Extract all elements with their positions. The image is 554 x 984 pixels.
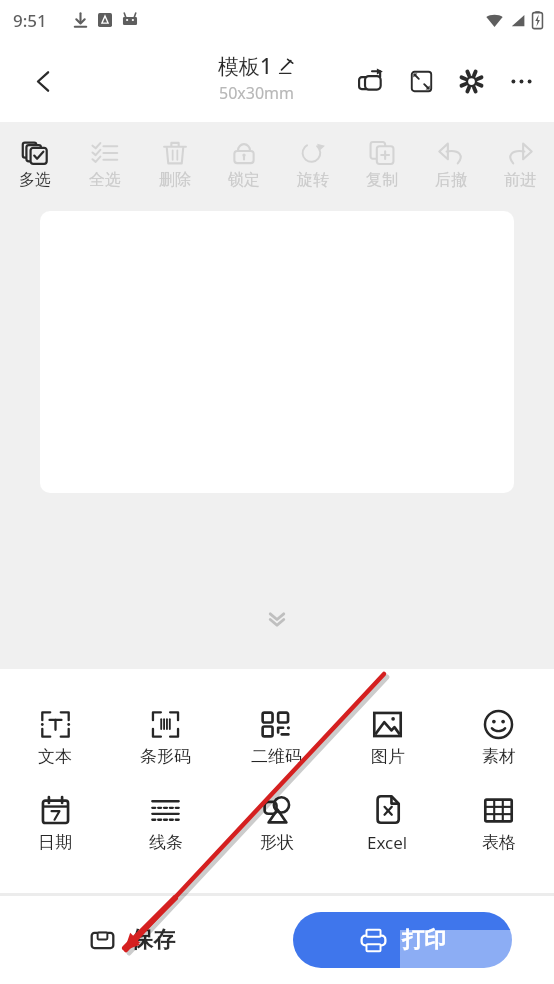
button[interactable]: Scale 1.0 <box>396 56 446 106</box>
staticText: 锁定 <box>228 170 260 190</box>
staticText: 旋转 <box>297 170 329 190</box>
button[interactable]: 删除 <box>140 122 209 207</box>
staticText: 文本 <box>38 746 72 767</box>
button[interactable]: 全选 <box>70 122 140 207</box>
button[interactable]: Excel <box>332 793 443 854</box>
staticText: 多选 <box>19 170 51 190</box>
button[interactable]: 多选 <box>0 122 70 207</box>
staticText: 保存 <box>131 926 175 954</box>
button[interactable]: 形状 <box>221 794 332 853</box>
button[interactable]: 后撤 <box>416 122 485 207</box>
staticText: 后撤 <box>435 170 467 190</box>
button[interactable]: More options <box>496 56 546 106</box>
staticText: 素材 <box>482 746 516 767</box>
button[interactable]: 复制 <box>347 122 416 207</box>
staticText: 删除 <box>159 170 191 190</box>
button[interactable]: Settings <box>446 56 496 106</box>
button[interactable]: 旋转 <box>278 122 347 207</box>
staticText: 日期 <box>38 832 72 853</box>
staticText: 前进 <box>504 170 536 190</box>
staticText: 线条 <box>149 832 183 853</box>
staticText: 复制 <box>366 170 398 190</box>
button[interactable]: 表格 <box>443 794 554 853</box>
button[interactable]: 二维码 <box>221 708 332 767</box>
button[interactable]: Back <box>20 58 66 104</box>
staticText: 打印 <box>402 926 446 954</box>
button[interactable]: 素材 <box>443 708 554 767</box>
button[interactable]: 日期 <box>0 794 110 853</box>
button[interactable]: Expand panel <box>260 602 294 636</box>
staticText: 全选 <box>89 170 121 190</box>
button[interactable]: Layers <box>346 56 396 106</box>
button[interactable]: 模板1 <box>218 52 294 104</box>
button[interactable]: 线条 <box>110 794 221 853</box>
staticText: Excel <box>367 831 408 854</box>
staticText: 表格 <box>482 832 516 853</box>
staticText: 二维码 <box>251 746 302 767</box>
button[interactable]: 保存 <box>85 922 179 958</box>
staticText: 图片 <box>371 746 405 767</box>
staticText: 9:51 <box>13 9 47 32</box>
staticText: 模板1 <box>218 52 273 81</box>
staticText: 条形码 <box>140 746 191 767</box>
staticText: 形状 <box>260 832 294 853</box>
staticText: 50x30mm <box>219 82 294 104</box>
button[interactable]: 图片 <box>332 708 443 767</box>
button[interactable]: 前进 <box>485 122 554 207</box>
button[interactable]: 文本 <box>0 708 110 767</box>
button[interactable]: 打印 <box>293 912 512 968</box>
button[interactable]: 锁定 <box>209 122 278 207</box>
button[interactable]: 条形码 <box>110 708 221 767</box>
